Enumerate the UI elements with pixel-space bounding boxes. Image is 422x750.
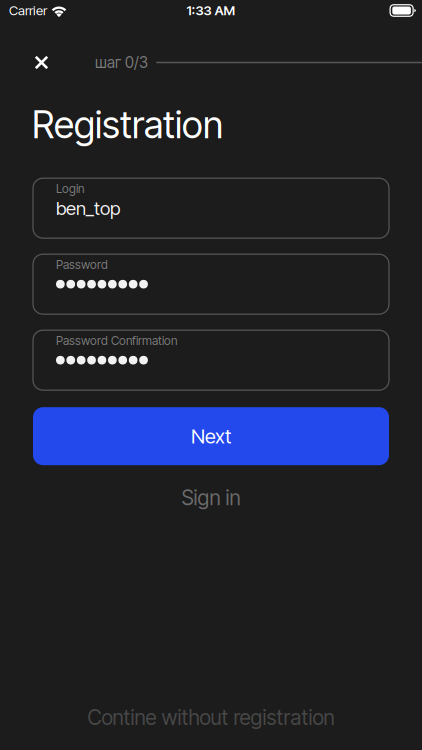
- staticText: Registration: [32, 102, 223, 147]
- staticText: Contine without registration: [87, 705, 334, 730]
- staticText: Sign in: [181, 485, 240, 510]
- button[interactable]: Sign in: [0, 485, 422, 510]
- staticText: шаг 0/3: [95, 53, 148, 72]
- button[interactable]: Contine without registration: [0, 705, 422, 730]
- staticText: Password: [56, 257, 108, 272]
- staticText: Login: [56, 181, 84, 196]
- staticText: Next: [191, 424, 231, 448]
- button[interactable]: Close: [28, 42, 55, 83]
- button[interactable]: Next: [33, 407, 389, 465]
- staticText: Carrier: [9, 2, 47, 18]
- staticText: ben_top: [56, 197, 120, 219]
- staticText: Password Confirmation: [56, 333, 177, 348]
- staticText: 1:33 AM: [186, 2, 235, 18]
